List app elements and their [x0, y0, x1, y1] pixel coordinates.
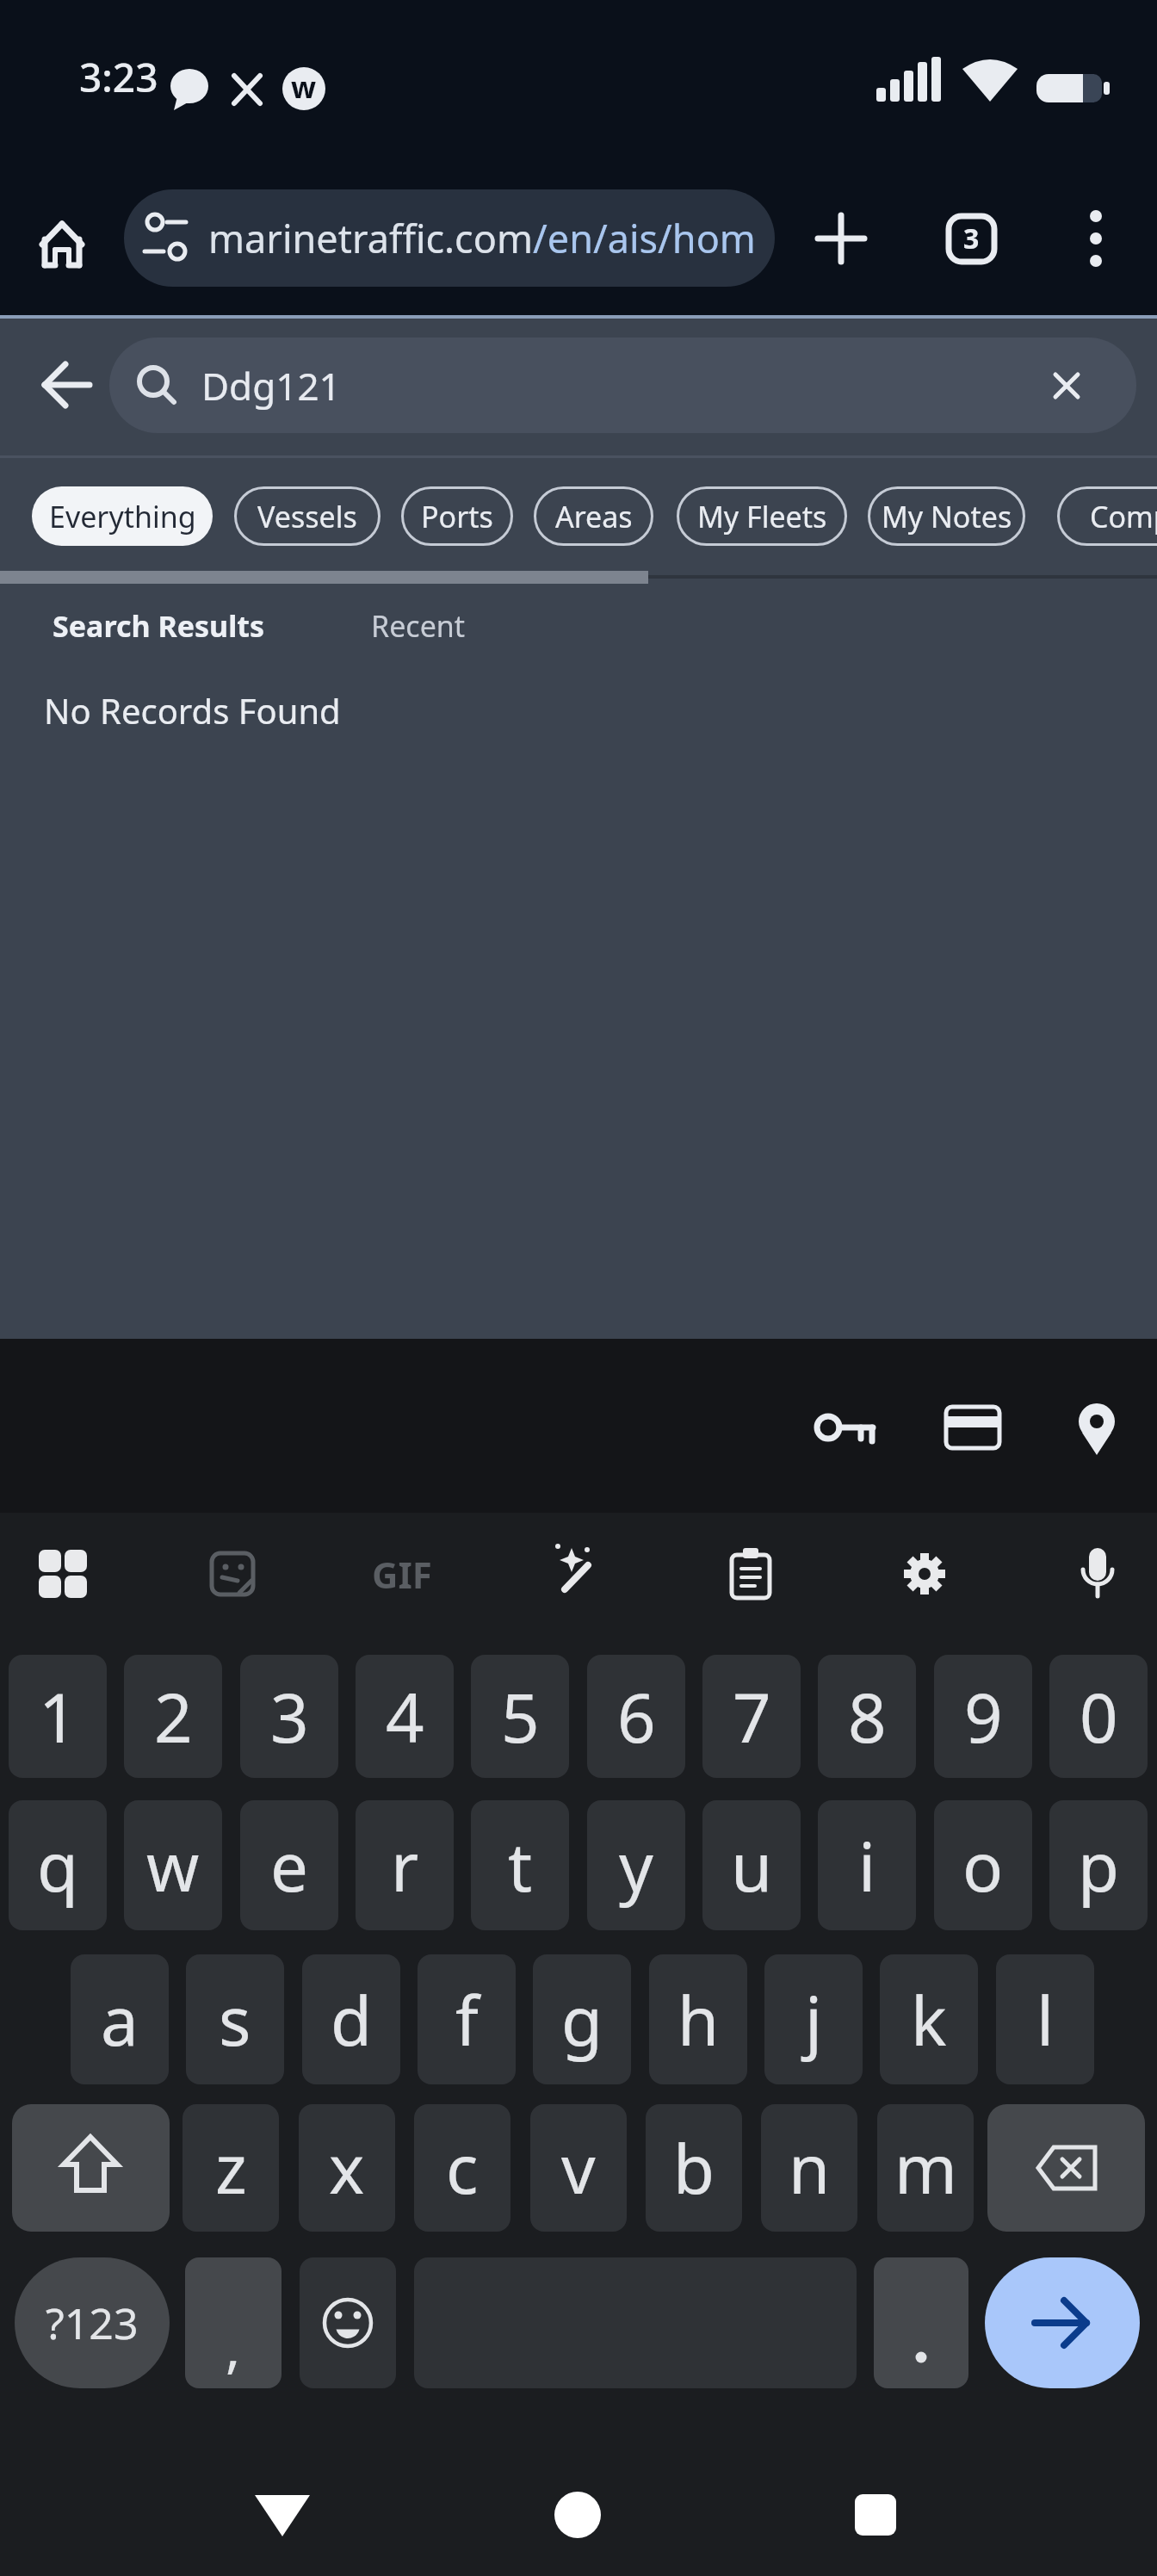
- button[interactable]: j: [764, 1954, 863, 2084]
- button[interactable]: f: [418, 1954, 516, 2084]
- button[interactable]: [985, 2257, 1140, 2388]
- button[interactable]: [26, 344, 108, 426]
- button[interactable]: 4: [356, 1655, 454, 1778]
- staticText: 5: [501, 1671, 540, 1762]
- button[interactable]: Ports: [401, 486, 513, 546]
- staticText: Comp: [1090, 497, 1157, 536]
- staticText: No Records Found: [44, 687, 341, 734]
- button[interactable]: 0: [1049, 1655, 1148, 1778]
- staticText: Search Results: [53, 606, 265, 646]
- button[interactable]: Everything: [32, 486, 213, 546]
- button[interactable]: y: [587, 1800, 685, 1930]
- button[interactable]: w: [124, 1800, 222, 1930]
- button[interactable]: g: [533, 1954, 631, 2084]
- staticText: 1: [39, 1671, 77, 1762]
- button[interactable]: [703, 1526, 798, 1621]
- button[interactable]: n: [761, 2104, 857, 2232]
- button[interactable]: [805, 1384, 891, 1471]
- button[interactable]: [530, 1526, 625, 1621]
- staticText: f: [455, 1974, 479, 2065]
- staticText: q: [37, 1820, 78, 1911]
- button[interactable]: c: [414, 2104, 510, 2232]
- button[interactable]: My Fleets: [677, 486, 847, 546]
- staticText: g: [561, 1974, 603, 2065]
- staticText: a: [101, 1974, 139, 2065]
- button[interactable]: x: [299, 2104, 395, 2232]
- button[interactable]: [185, 1526, 280, 1621]
- staticText: s: [219, 1974, 251, 2065]
- staticText: w: [146, 1820, 200, 1911]
- button[interactable]: r: [356, 1800, 454, 1930]
- button[interactable]: h: [649, 1954, 747, 2084]
- staticText: j: [805, 1974, 823, 2065]
- staticText: 6: [617, 1671, 656, 1762]
- button[interactable]: Areas: [534, 486, 653, 546]
- button[interactable]: l: [996, 1954, 1094, 2084]
- button[interactable]: e: [240, 1800, 338, 1930]
- button[interactable]: u: [702, 1800, 801, 1930]
- button[interactable]: t: [471, 1800, 569, 1930]
- staticText: 8: [848, 1671, 887, 1762]
- staticText: Ddg121: [201, 360, 341, 412]
- button[interactable]: [1029, 348, 1104, 424]
- button[interactable]: 7: [702, 1655, 801, 1778]
- button[interactable]: Recent: [344, 598, 499, 653]
- button[interactable]: s: [186, 1954, 284, 2084]
- button[interactable]: Ddg121: [109, 337, 1136, 433]
- button[interactable]: 6: [587, 1655, 685, 1778]
- button[interactable]: i: [818, 1800, 916, 1930]
- button[interactable]: 3: [240, 1655, 338, 1778]
- button[interactable]: Vessels: [234, 486, 381, 546]
- button[interactable]: m: [877, 2104, 974, 2232]
- button[interactable]: Comp: [1057, 486, 1157, 546]
- staticText: y: [619, 1820, 653, 1911]
- button[interactable]: [874, 2257, 968, 2388]
- button[interactable]: [185, 2257, 282, 2388]
- button[interactable]: o: [934, 1800, 1032, 1930]
- button[interactable]: a: [71, 1954, 169, 2084]
- button[interactable]: ?123: [15, 2257, 170, 2388]
- button[interactable]: k: [880, 1954, 978, 2084]
- button[interactable]: p: [1049, 1800, 1148, 1930]
- button[interactable]: My Notes: [868, 486, 1025, 546]
- button[interactable]: [300, 2257, 396, 2388]
- button[interactable]: [877, 1526, 972, 1621]
- button[interactable]: [244, 2476, 321, 2554]
- staticText: c: [446, 2122, 479, 2214]
- staticText: u: [731, 1820, 773, 1911]
- button[interactable]: [12, 2104, 170, 2232]
- button[interactable]: [539, 2476, 616, 2554]
- staticText: n: [789, 2122, 831, 2214]
- button[interactable]: [355, 1526, 449, 1621]
- staticText: Vessels: [257, 497, 357, 536]
- staticText: 2: [154, 1671, 193, 1762]
- staticText: My Notes: [882, 497, 1012, 536]
- button[interactable]: v: [530, 2104, 627, 2232]
- button[interactable]: [1054, 1384, 1140, 1471]
- button[interactable]: d: [302, 1954, 400, 2084]
- button[interactable]: q: [9, 1800, 107, 1930]
- staticText: 3:23: [79, 50, 158, 104]
- button[interactable]: 1: [9, 1655, 107, 1778]
- button[interactable]: 8: [818, 1655, 916, 1778]
- button[interactable]: [1050, 1526, 1145, 1621]
- button[interactable]: 2: [124, 1655, 222, 1778]
- button[interactable]: [1057, 200, 1135, 277]
- button[interactable]: marinetraffic.com/en/ais/hom: [124, 189, 775, 287]
- button[interactable]: Search Results: [34, 598, 284, 653]
- staticText: Everything: [49, 497, 196, 536]
- button[interactable]: [930, 1384, 1016, 1471]
- staticText: 7: [733, 1671, 771, 1762]
- button[interactable]: [802, 200, 880, 277]
- button[interactable]: 5: [471, 1655, 569, 1778]
- button[interactable]: b: [646, 2104, 742, 2232]
- button[interactable]: [26, 207, 103, 284]
- button[interactable]: 9: [934, 1655, 1032, 1778]
- button[interactable]: [15, 1526, 110, 1621]
- button[interactable]: z: [183, 2104, 279, 2232]
- button[interactable]: 3: [932, 200, 1010, 277]
- staticText: 4: [386, 1671, 424, 1762]
- button[interactable]: [837, 2476, 914, 2554]
- button[interactable]: [987, 2104, 1145, 2232]
